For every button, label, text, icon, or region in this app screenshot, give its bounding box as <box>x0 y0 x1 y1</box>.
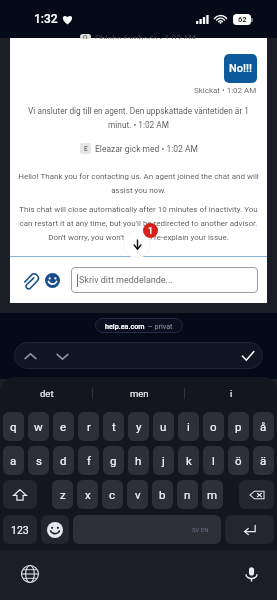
staticText: ö <box>235 454 242 467</box>
button[interactable]: m <box>202 480 223 509</box>
button[interactable]: x <box>77 480 98 509</box>
button[interactable]: det <box>0 377 93 409</box>
button[interactable]: Emoji <box>42 270 63 291</box>
button[interactable]: help.ea.com <box>95 318 183 333</box>
staticText: r <box>87 420 91 433</box>
button[interactable]: y <box>128 412 149 441</box>
button[interactable]: Emoji <box>41 515 69 544</box>
staticText: Eleazar gick med • 1:02 AM <box>95 144 198 154</box>
button[interactable]: Next field <box>51 345 73 367</box>
button[interactable]: g <box>103 446 124 475</box>
staticText: 1 <box>148 226 153 236</box>
staticText: ä <box>260 454 267 467</box>
staticText: o <box>210 420 217 433</box>
button[interactable]: ä <box>253 446 274 475</box>
button[interactable]: ö <box>228 446 249 475</box>
button[interactable]: Space <box>73 515 221 544</box>
button[interactable]: a <box>3 446 24 475</box>
staticText: Vi ansluter dig till en agent. Den uppsk… <box>18 106 259 130</box>
staticText: b <box>159 488 166 501</box>
button[interactable]: Backspace <box>239 480 274 509</box>
staticText: n <box>184 488 191 501</box>
button[interactable]: z <box>52 480 73 509</box>
staticText: 62 <box>238 15 247 24</box>
staticText: help.ea.com <box>105 322 145 330</box>
button[interactable]: l <box>203 446 224 475</box>
button[interactable]: No!!! <box>224 54 257 83</box>
staticText: Skickat • 1:02 AM <box>194 86 257 95</box>
button[interactable]: n <box>177 480 198 509</box>
button[interactable]: d <box>53 446 74 475</box>
staticText: v <box>135 488 141 501</box>
button[interactable]: f <box>78 446 99 475</box>
staticText: E <box>84 145 88 153</box>
button[interactable]: q <box>3 412 24 441</box>
staticText: This chat will close automatically after… <box>18 205 259 242</box>
button[interactable]: Previous field <box>19 345 41 367</box>
staticText: å <box>260 420 267 433</box>
staticText: O <box>83 34 88 39</box>
staticText: h <box>135 454 142 467</box>
button[interactable]: e <box>53 412 74 441</box>
button[interactable]: Attach file <box>19 270 40 291</box>
button[interactable]: i <box>178 412 199 441</box>
button[interactable]: Change language <box>19 563 41 585</box>
staticText: men <box>130 388 149 399</box>
button[interactable]: h <box>128 446 149 475</box>
button[interactable]: b <box>152 480 173 509</box>
button[interactable]: Voice input <box>239 562 263 586</box>
button[interactable]: Scroll to bottom <box>123 230 151 258</box>
button[interactable]: Shift <box>3 480 37 509</box>
staticText: c <box>109 488 116 501</box>
staticText: u <box>160 420 167 433</box>
staticText: – privat <box>148 322 173 330</box>
button[interactable]: Done <box>237 345 259 367</box>
staticText: i <box>230 388 233 399</box>
button[interactable]: w <box>28 412 49 441</box>
staticText: t <box>112 420 116 433</box>
staticText: i <box>187 420 190 433</box>
button[interactable]: å <box>253 412 274 441</box>
staticText: Ohlahn farnhade • 1:02 AM <box>95 34 197 39</box>
staticText: x <box>85 488 91 501</box>
staticText: y <box>136 420 142 433</box>
staticText: Skriv ditt meddelande... <box>79 275 173 286</box>
staticText: m <box>207 488 218 501</box>
button[interactable]: c <box>102 480 123 509</box>
button[interactable]: u <box>153 412 174 441</box>
staticText: k <box>186 454 192 467</box>
staticText: No!!! <box>229 62 252 75</box>
staticText: det <box>40 388 54 399</box>
button[interactable]: men <box>93 377 185 409</box>
button[interactable]: s <box>28 446 49 475</box>
staticText: s <box>36 454 42 467</box>
staticText: a <box>10 454 17 467</box>
staticText: j <box>162 454 165 467</box>
staticText: 1:32 <box>34 12 58 26</box>
button[interactable]: r <box>78 412 99 441</box>
staticText: SV EN <box>192 526 209 533</box>
staticText: d <box>60 454 67 467</box>
staticText: f <box>87 454 91 467</box>
staticText: l <box>212 454 215 467</box>
button[interactable]: k <box>178 446 199 475</box>
staticText: g <box>110 454 117 467</box>
button[interactable]: t <box>103 412 124 441</box>
button[interactable]: Enter <box>225 515 274 544</box>
staticText: 123 <box>11 524 29 536</box>
button[interactable]: j <box>153 446 174 475</box>
button[interactable]: 123 <box>3 515 37 544</box>
staticText: q <box>10 420 17 433</box>
button[interactable]: p <box>228 412 249 441</box>
button[interactable]: i <box>185 377 277 409</box>
staticText: w <box>34 420 43 433</box>
button[interactable]: Skriv ditt meddelande... <box>71 267 258 293</box>
button[interactable]: v <box>127 480 148 509</box>
staticText: z <box>60 488 66 501</box>
button[interactable]: o <box>203 412 224 441</box>
staticText: p <box>235 420 242 433</box>
staticText: e <box>60 420 67 433</box>
staticText: Hello! Thank you for contacting us. An a… <box>16 172 261 195</box>
